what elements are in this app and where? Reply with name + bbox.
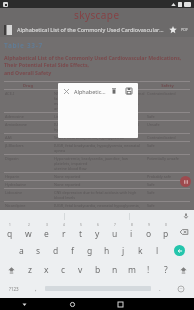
- button[interactable]: Emoji: [169, 279, 193, 298]
- staticText: Contraindicated: [147, 135, 176, 140]
- button[interactable]: h: [98, 241, 115, 260]
- button[interactable]: ?: [157, 260, 174, 279]
- button[interactable]: ?123: [1, 279, 27, 298]
- staticText: e: [44, 228, 49, 240]
- staticText: Safe: [147, 182, 155, 187]
- staticText: j: [122, 245, 125, 257]
- staticText: 3: [46, 223, 48, 227]
- button[interactable]: 8: [123, 222, 140, 241]
- button[interactable]: 4: [55, 222, 72, 241]
- button[interactable]: 2: [19, 222, 37, 241]
- button[interactable]: 9: [140, 222, 157, 241]
- button[interactable]: a: [12, 241, 30, 260]
- button[interactable]: Audio: [180, 176, 191, 187]
- button[interactable]: Shift: [1, 260, 21, 279]
- button[interactable]: 7: [106, 222, 123, 241]
- staticText: Nicardipine: [5, 203, 26, 208]
- button[interactable]: k: [132, 241, 149, 260]
- button[interactable]: 0: [157, 222, 174, 241]
- button[interactable]: PDF: [180, 26, 190, 33]
- staticText: ?: [164, 264, 168, 276]
- staticText: Amiodarone: [5, 122, 27, 127]
- button[interactable]: 6: [89, 222, 106, 241]
- staticText: 5: [80, 223, 82, 227]
- button[interactable]: v: [72, 260, 89, 279]
- staticText: o: [146, 228, 152, 240]
- button[interactable]: l: [149, 241, 166, 260]
- button[interactable]: z: [21, 260, 38, 279]
- staticText: c: [61, 264, 66, 276]
- staticText: IUGR, fetal bradycardia, neonatal hypogl…: [54, 203, 145, 209]
- button[interactable]: Close: [62, 87, 71, 96]
- staticText: Alphabetical L.L..: [74, 88, 107, 95]
- staticText: p: [163, 228, 169, 240]
- button[interactable]: f: [64, 241, 81, 260]
- staticText: None reported: [54, 174, 81, 179]
- button[interactable]: 5: [72, 222, 89, 241]
- staticText: r: [62, 228, 66, 240]
- staticText: f: [71, 245, 74, 257]
- button[interactable]: Backspace: [174, 222, 193, 241]
- staticText: Limited data: [54, 114, 77, 119]
- staticText: b: [95, 264, 101, 276]
- staticText: Potentially unsafe: [147, 156, 179, 161]
- staticText: Table 33-7: [4, 41, 43, 50]
- button[interactable]: Enter: [166, 241, 193, 260]
- button[interactable]: Delete: [109, 86, 119, 96]
- button[interactable]: j: [115, 241, 132, 260]
- staticText: Safe: [147, 203, 155, 208]
- button[interactable]: x: [38, 260, 55, 279]
- staticText: Alphabetical List of the Commonly Used C…: [17, 26, 165, 33]
- staticText: NSAI: prematurity, low birth weight, neo…: [54, 91, 145, 111]
- button[interactable]: Shift right: [174, 260, 193, 279]
- button[interactable]: Voice input: [130, 210, 194, 222]
- staticText: 8: [131, 223, 133, 227]
- staticText: 1: [9, 223, 11, 227]
- button[interactable]: n: [106, 260, 123, 279]
- staticText: ACE-I: [5, 91, 15, 96]
- button[interactable]: d: [47, 241, 64, 260]
- button[interactable]: b: [89, 260, 106, 279]
- staticText: skyscape: [74, 8, 120, 22]
- button[interactable]: m: [123, 260, 140, 279]
- staticText: n: [112, 264, 118, 276]
- staticText: k: [138, 245, 143, 257]
- staticText: Safe: [147, 190, 155, 195]
- staticText: m: [128, 264, 136, 276]
- button[interactable]: ,: [27, 279, 45, 298]
- staticText: ,: [35, 285, 37, 293]
- button[interactable]: g: [81, 241, 98, 260]
- staticText: .: [159, 285, 161, 293]
- staticText: 2: [28, 223, 30, 227]
- staticText: Unsafe: [147, 122, 160, 127]
- button[interactable]: !: [140, 260, 157, 279]
- staticText: q: [7, 228, 13, 240]
- button[interactable]: 1: [1, 222, 19, 241]
- staticText: Hydralazine: [5, 182, 27, 187]
- button[interactable]: Back: [0, 298, 48, 310]
- staticText: 9: [148, 223, 150, 227]
- staticText: Adenosine: [5, 114, 24, 119]
- button[interactable]: c: [55, 260, 72, 279]
- staticText: ?123: [9, 286, 19, 292]
- button[interactable]: Book: [4, 25, 12, 35]
- staticText: s: [36, 245, 41, 257]
- staticText: Alphabetical List of the Commonly Used C…: [4, 54, 190, 77]
- staticText: IUGR, preterm birth, fetal bradycardia, …: [54, 122, 145, 132]
- button[interactable]: Save: [124, 86, 134, 96]
- button[interactable]: 3: [37, 222, 55, 241]
- button[interactable]: Home: [48, 298, 96, 310]
- staticText: h: [104, 245, 110, 257]
- button[interactable]: Favorite: [168, 25, 178, 35]
- button[interactable]: Recents: [96, 298, 145, 310]
- staticText: CNS depression due to fetal acidosis wit…: [54, 190, 145, 200]
- staticText: l: [156, 245, 159, 257]
- staticText: Safe: [147, 143, 155, 148]
- staticText: Safety: [161, 83, 174, 88]
- staticText: d: [53, 245, 59, 257]
- button[interactable]: s: [30, 241, 47, 260]
